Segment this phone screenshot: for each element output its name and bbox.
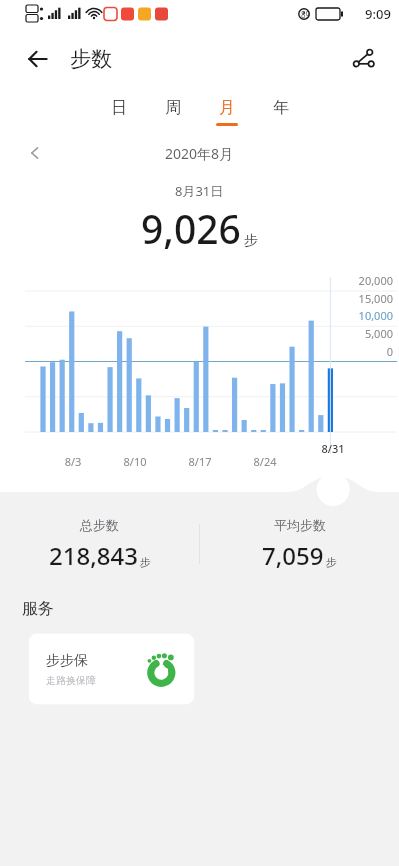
staticText: 8/3 [53,454,93,469]
button[interactable]: 平均步数 [200,517,399,572]
staticText: 218,843 [49,539,138,572]
button[interactable]: 年 [262,98,300,123]
staticText: 2020年8月 [165,144,234,163]
button[interactable]: 总步数 [0,517,199,572]
staticText: 15,000 [333,291,393,306]
staticText: 8/17 [180,454,220,469]
staticText: 10,000 [333,308,393,323]
staticText: 步 [140,555,151,569]
button[interactable]: 月 [208,98,246,126]
staticText: 周 [154,98,192,118]
staticText: 8/24 [245,454,285,469]
staticText: 步 [326,555,337,569]
staticText: 总步数 [80,517,119,533]
staticText: 5,000 [333,326,393,341]
button[interactable]: 周 [154,98,192,123]
staticText: 0 [333,344,393,359]
staticText: 日 [100,98,138,118]
button[interactable]: 日 [100,98,138,123]
staticText: 9:09 [365,5,391,23]
button[interactable]: 步步保 [28,633,195,705]
staticText: 20,000 [333,273,393,288]
staticText: 步步保 [46,652,88,670]
staticText: 平均步数 [274,517,326,533]
staticText: 服务 [22,599,54,619]
staticText: 8/10 [115,454,155,469]
staticText: 走路换保障 [46,674,96,687]
staticText: 步 [244,232,258,250]
staticText: 9,026 [141,202,241,255]
staticText: 7,059 [262,539,324,572]
staticText: 89 [301,9,311,20]
button[interactable]: Share [343,38,385,80]
button[interactable]: Previous month [18,136,52,170]
staticText: 步数 [70,46,112,72]
staticText: 8月31日 [175,182,224,200]
staticText: 8/31 [313,441,353,456]
staticText: 年 [262,98,300,118]
staticText: 月 [208,98,246,118]
button[interactable]: Back [18,39,58,79]
